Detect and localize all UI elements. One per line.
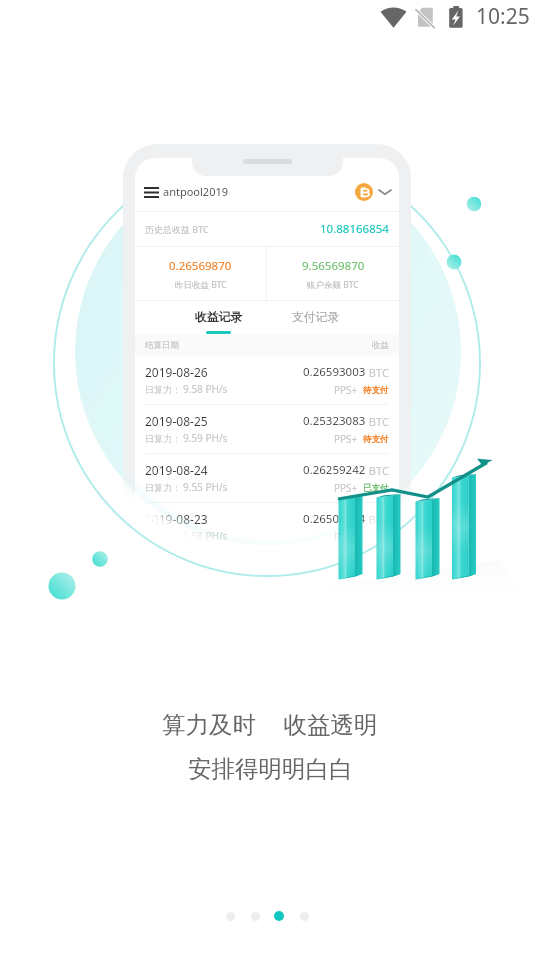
staticText: 9.59 PH/s bbox=[183, 431, 228, 445]
staticText: BTC bbox=[366, 463, 389, 478]
staticText: antpool2019 bbox=[163, 184, 229, 199]
button[interactable]: 2019-08-25 bbox=[135, 405, 399, 454]
button[interactable]: 2019-08-26 bbox=[135, 356, 399, 405]
staticText: 收益记录 bbox=[195, 310, 243, 325]
staticText: PPS+ bbox=[334, 481, 358, 495]
button[interactable]: 收益记录 bbox=[170, 301, 267, 334]
staticText: 0.25323083 bbox=[303, 413, 366, 429]
staticText: 9.55 PH/s bbox=[183, 480, 228, 494]
staticText: 收益 bbox=[372, 340, 389, 351]
staticText: 2019-08-24 bbox=[145, 462, 208, 478]
staticText: 0.26593003 bbox=[303, 364, 366, 380]
staticText: 2019-08-23 bbox=[145, 511, 208, 527]
button[interactable]: 9.56569870 bbox=[267, 247, 399, 291]
staticText: BTC bbox=[366, 414, 389, 429]
staticText: 10.88166854 bbox=[320, 221, 389, 237]
staticText: 支付记录 bbox=[292, 310, 340, 325]
button[interactable]: Bitcoin bbox=[355, 183, 373, 201]
staticText: 账户余额 BTC bbox=[307, 279, 359, 291]
button[interactable]: Page 1 bbox=[226, 912, 235, 921]
staticText: 0.26569870 bbox=[169, 258, 232, 274]
staticText: 2019-08-26 bbox=[145, 364, 208, 380]
staticText: 已支付 bbox=[363, 532, 389, 543]
staticText: 日算力： bbox=[145, 482, 181, 493]
button[interactable]: Page 3 bbox=[274, 911, 284, 921]
staticText: 结算日期 bbox=[145, 340, 179, 351]
button[interactable]: 0.26569870 bbox=[135, 247, 266, 291]
button[interactable]: Menu bbox=[144, 183, 162, 201]
staticText: 算力及时 收益透明 bbox=[162, 708, 378, 740]
staticText: 日算力： bbox=[145, 433, 181, 444]
staticText: 9.58 PH/s bbox=[183, 529, 228, 543]
staticText: 昨日收益 BTC bbox=[175, 279, 227, 291]
staticText: BTC bbox=[366, 512, 389, 527]
staticText: 10:25 bbox=[476, 2, 530, 31]
staticText: PPS+ bbox=[334, 530, 358, 544]
button[interactable]: 支付记录 bbox=[267, 301, 364, 331]
staticText: 历史总收益 BTC bbox=[145, 223, 209, 235]
staticText: PPS+ bbox=[334, 432, 358, 446]
staticText: 安排得明明白白 bbox=[188, 754, 353, 784]
staticText: PPS+ bbox=[334, 383, 358, 397]
staticText: BTC bbox=[366, 365, 389, 380]
staticText: 待支付 bbox=[363, 385, 389, 396]
button[interactable]: 2019-08-23 bbox=[135, 503, 399, 552]
button[interactable]: 2019-08-24 bbox=[135, 454, 399, 503]
button[interactable]: Expand bbox=[379, 188, 391, 196]
button[interactable]: Page 4 bbox=[300, 912, 309, 921]
staticText: 2019-08-25 bbox=[145, 413, 208, 429]
staticText: 9.58 PH/s bbox=[183, 382, 228, 396]
staticText: 9.56569870 bbox=[302, 258, 365, 274]
button[interactable]: Page 2 bbox=[251, 912, 260, 921]
button[interactable]: 历史总收益 BTC bbox=[135, 212, 399, 246]
staticText: 日算力： bbox=[145, 384, 181, 395]
staticText: 已支付 bbox=[363, 483, 389, 494]
staticText: 待支付 bbox=[363, 434, 389, 445]
staticText: 0.26259242 bbox=[303, 462, 366, 478]
staticText: 日算力： bbox=[145, 531, 181, 542]
staticText: 0.26501234 bbox=[303, 511, 366, 527]
